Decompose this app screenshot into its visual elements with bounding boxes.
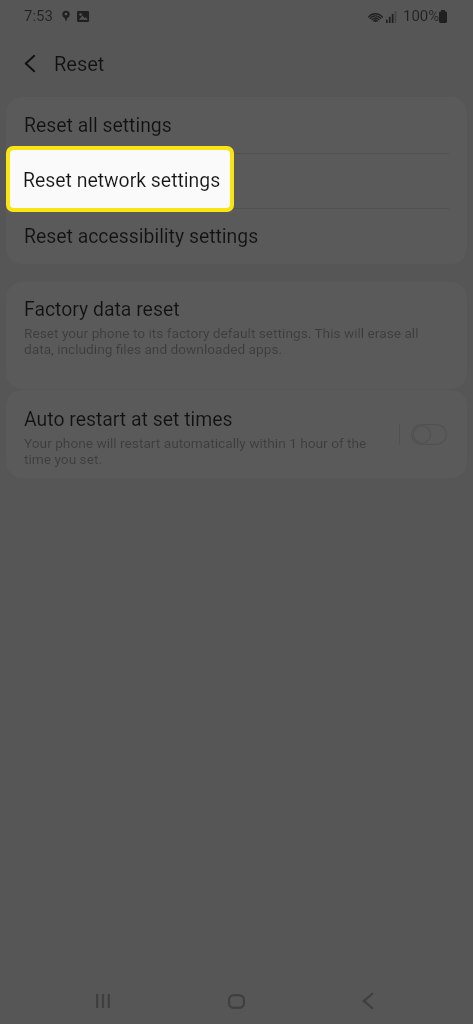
staticText: Reset accessibility settings [24,225,259,248]
button[interactable]: Auto restart at set times [6,390,384,478]
button[interactable]: Navigate up [14,47,46,79]
staticText: Reset network settings [23,169,221,192]
button[interactable]: Home [204,976,268,1024]
button[interactable]: Recent apps [71,976,135,1024]
staticText: Factory data reset [24,298,180,321]
button[interactable]: Reset network settings [6,154,467,208]
staticText: 100% [403,7,440,25]
staticText: Reset network settings [24,170,222,193]
staticText: Reset [54,52,105,75]
staticText: Auto restart at set times [24,408,233,431]
staticText: Reset all settings [24,114,172,137]
staticText: 7:53 [24,7,53,25]
staticText: Reset your phone to its factory default … [24,325,439,357]
staticText: Your phone will restart automatically wi… [24,435,376,467]
button[interactable]: Reset accessibility settings [6,209,467,264]
button[interactable]: Factory data reset [6,282,467,389]
button[interactable]: Reset all settings [6,97,467,153]
button[interactable]: Reset network settings [10,150,230,208]
